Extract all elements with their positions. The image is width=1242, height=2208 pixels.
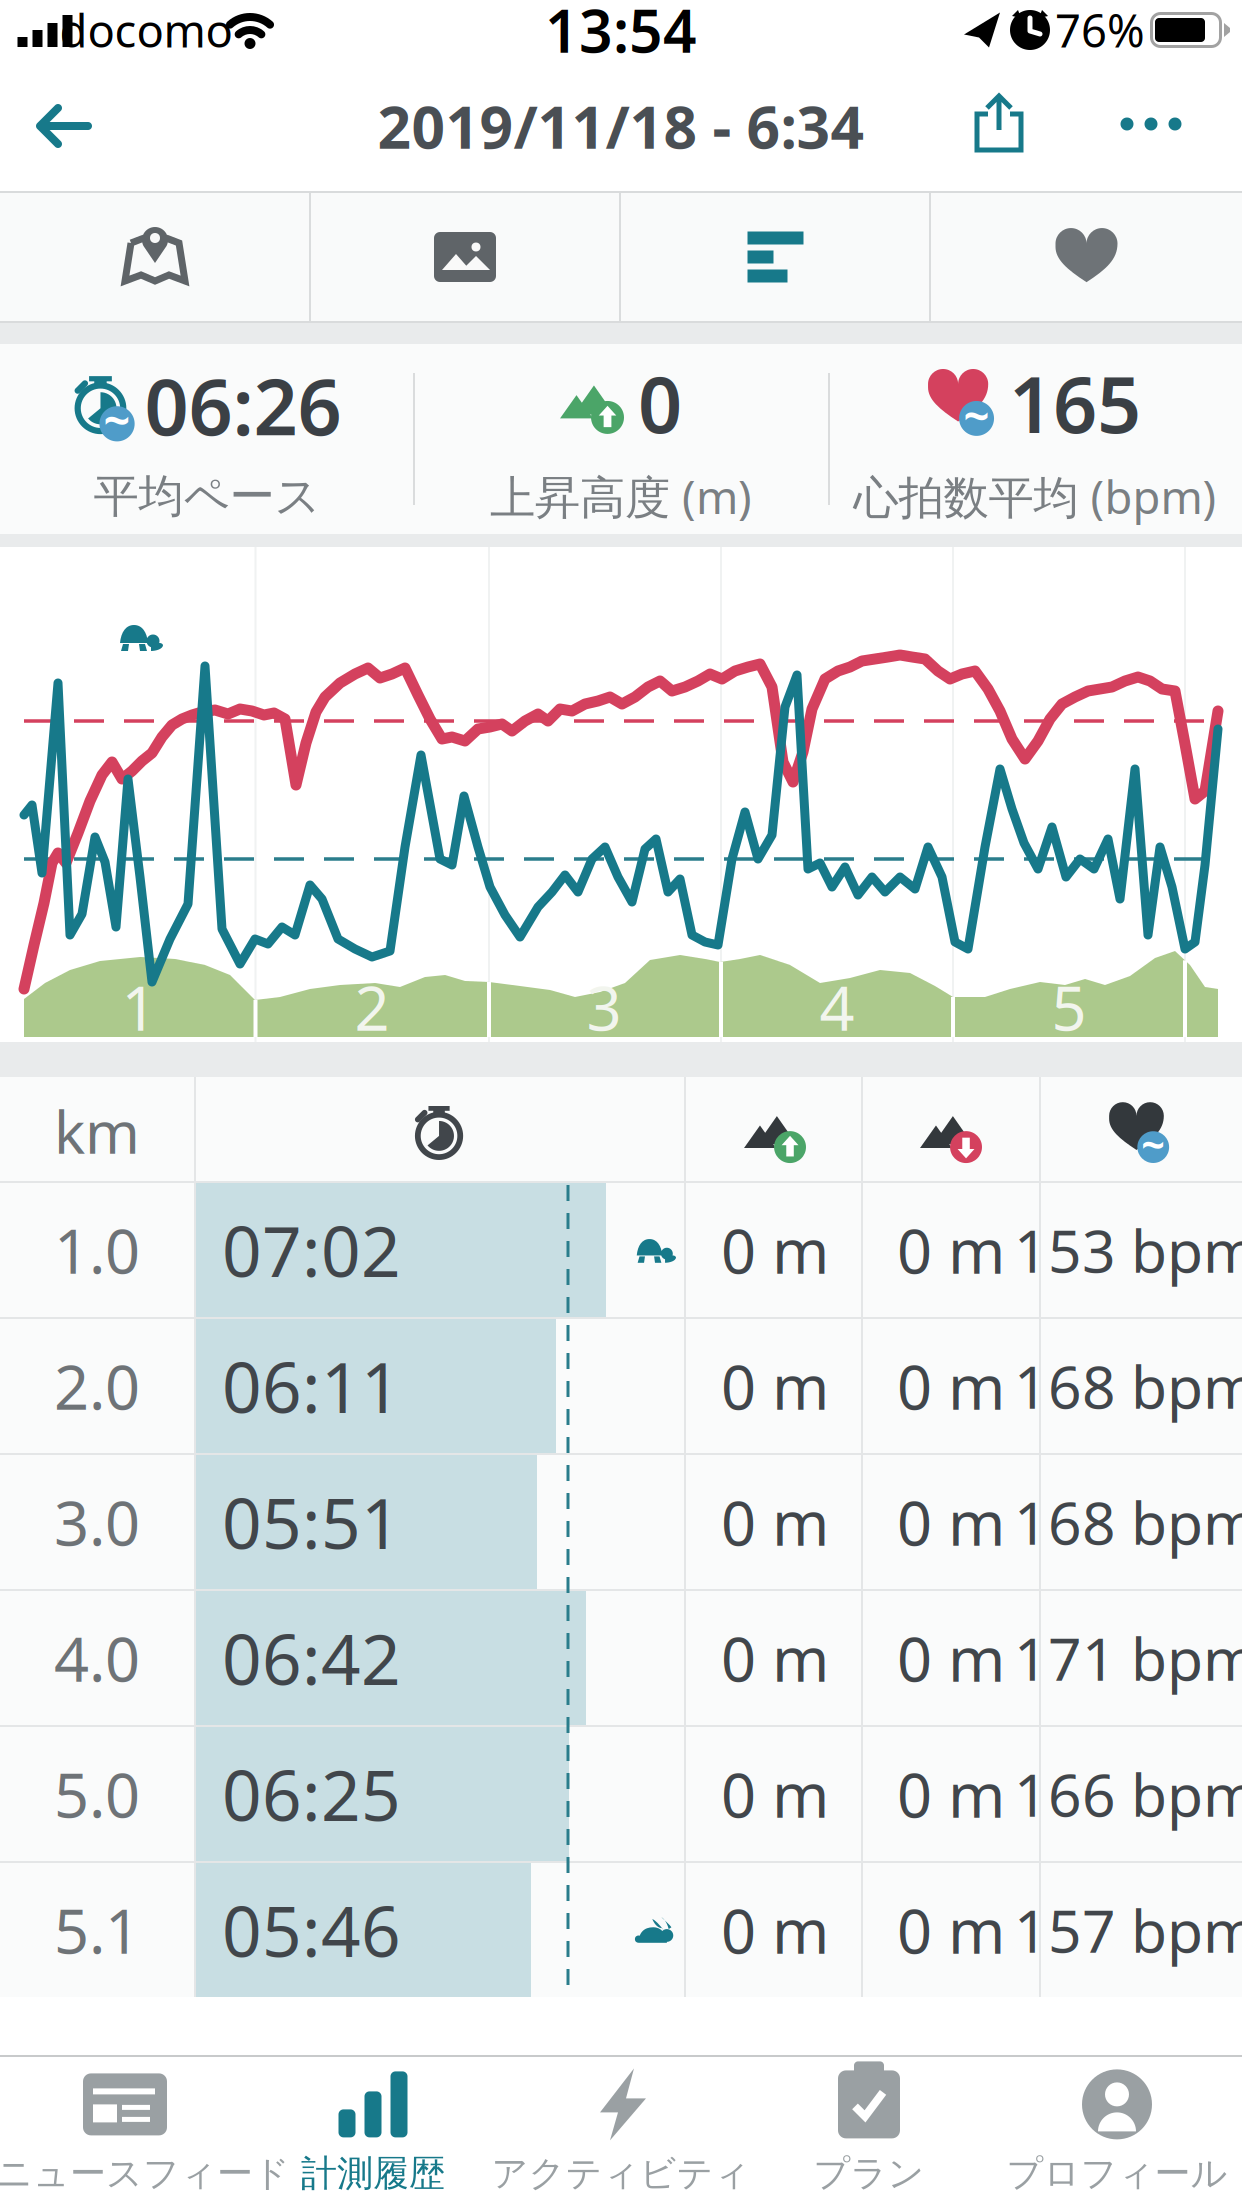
staticText: 0 m bbox=[721, 1209, 829, 1291]
staticText: 1 bbox=[121, 966, 156, 1048]
staticText: 05:51 bbox=[222, 1476, 401, 1568]
staticText: 07:02 bbox=[222, 1204, 401, 1296]
staticText: 0 m bbox=[721, 1753, 829, 1835]
button[interactable] bbox=[310, 193, 620, 321]
staticText: 13:54 bbox=[545, 0, 697, 69]
staticText: ~ bbox=[964, 384, 990, 445]
button[interactable]: プラン bbox=[745, 2059, 993, 2205]
staticText: 168 bpm bbox=[1014, 1483, 1242, 1561]
staticText: 05:46 bbox=[222, 1884, 401, 1976]
staticText: 168 bpm bbox=[1014, 1347, 1242, 1425]
button[interactable]: ~ bbox=[0, 344, 414, 534]
staticText: プロフィール bbox=[1006, 2151, 1227, 2196]
staticText: 0 m bbox=[897, 1481, 1005, 1563]
staticText: ニュースフィード bbox=[0, 2151, 290, 2196]
button[interactable]: 計測履歴 bbox=[249, 2059, 497, 2205]
staticText: 5.0 bbox=[54, 1753, 140, 1835]
staticText: 2 bbox=[354, 966, 389, 1048]
staticText: ~ bbox=[1141, 1116, 1165, 1171]
staticText: 0 m bbox=[897, 1617, 1005, 1699]
staticText: 166 bpm bbox=[1014, 1755, 1242, 1833]
button[interactable] bbox=[1102, 99, 1199, 148]
button[interactable] bbox=[931, 193, 1242, 321]
staticText: 153 bpm bbox=[1014, 1211, 1242, 1289]
staticText: 4.0 bbox=[54, 1617, 140, 1699]
staticText: 平均ペース bbox=[93, 468, 320, 524]
button[interactable]: アクティビティ bbox=[497, 2059, 745, 2205]
button[interactable]: ニュースフィード bbox=[1, 2059, 249, 2205]
staticText: アクティビティ bbox=[491, 2151, 750, 2196]
staticText: 0 m bbox=[897, 1209, 1005, 1291]
staticText: 06:26 bbox=[144, 354, 341, 456]
staticText: 2.0 bbox=[54, 1345, 140, 1427]
staticText: 計測履歴 bbox=[301, 2151, 445, 2196]
button[interactable] bbox=[0, 193, 310, 321]
staticText: 0 m bbox=[721, 1481, 829, 1563]
staticText: 1.0 bbox=[54, 1209, 140, 1291]
staticText: 76% bbox=[1055, 0, 1145, 60]
button[interactable] bbox=[620, 193, 931, 321]
button[interactable]: 0 bbox=[414, 344, 828, 534]
staticText: 06:11 bbox=[222, 1340, 401, 1432]
staticText: 上昇高度 (m) bbox=[490, 466, 752, 526]
staticText: 4 bbox=[819, 966, 854, 1048]
staticText: 06:42 bbox=[222, 1612, 401, 1704]
staticText: プラン bbox=[813, 2151, 924, 2196]
button[interactable]: ~ bbox=[828, 344, 1242, 534]
staticText: 0 m bbox=[721, 1889, 829, 1971]
staticText: 0 m bbox=[897, 1753, 1005, 1835]
staticText: 0 m bbox=[897, 1889, 1005, 1971]
staticText: 5 bbox=[1051, 966, 1086, 1048]
staticText: 171 bpm bbox=[1014, 1619, 1242, 1697]
staticText: km bbox=[54, 1092, 140, 1170]
button[interactable]: プロフィール bbox=[993, 2059, 1241, 2205]
staticText: 3 bbox=[586, 966, 621, 1048]
staticText: 0 m bbox=[721, 1617, 829, 1699]
staticText: 0 bbox=[638, 352, 682, 454]
staticText: ~ bbox=[103, 389, 130, 451]
staticText: 157 bpm bbox=[1014, 1891, 1242, 1969]
staticText: 06:25 bbox=[222, 1748, 401, 1840]
staticText: 0 m bbox=[897, 1345, 1005, 1427]
staticText: docomo bbox=[59, 0, 232, 60]
staticText: 3.0 bbox=[54, 1481, 140, 1563]
staticText: 2019/11/18 - 6:34 bbox=[377, 87, 864, 165]
staticText: 心拍数平均 (bpm) bbox=[853, 466, 1216, 526]
staticText: 0 m bbox=[721, 1345, 829, 1427]
staticText: 165 bbox=[1009, 352, 1141, 454]
staticText: 5.1 bbox=[54, 1889, 140, 1971]
button[interactable] bbox=[16, 85, 112, 167]
button[interactable] bbox=[959, 78, 1039, 168]
